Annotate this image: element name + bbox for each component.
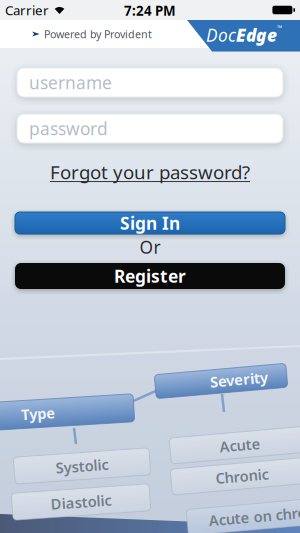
staticText: Diastolic (50, 492, 111, 512)
staticText: Register (114, 264, 186, 287)
staticText: Doc (206, 23, 236, 46)
staticText: Type (21, 402, 55, 422)
staticText: username (29, 71, 112, 94)
staticText: Edge (236, 23, 277, 46)
staticText: Carrier (5, 1, 49, 19)
staticText: Systolic (55, 456, 108, 476)
staticText: Sign In (120, 211, 180, 234)
button[interactable]: Forgot your password? (50, 160, 250, 184)
button[interactable]: Register (15, 263, 285, 289)
staticText: Severity (210, 371, 268, 391)
button[interactable]: Sign In (15, 212, 285, 234)
button[interactable]: password (17, 114, 283, 143)
staticText: Powered by Provident (44, 27, 152, 41)
staticText: 7:24 PM (124, 2, 176, 19)
staticText: Forgot your password? (50, 160, 250, 184)
button[interactable]: username (17, 68, 283, 97)
staticText: Chronic (215, 466, 268, 486)
staticText: Acute on chron (208, 506, 300, 526)
staticText: Or (139, 235, 160, 258)
staticText: ™ (277, 23, 282, 32)
staticText: Acute (219, 435, 260, 455)
staticText: password (29, 117, 108, 140)
